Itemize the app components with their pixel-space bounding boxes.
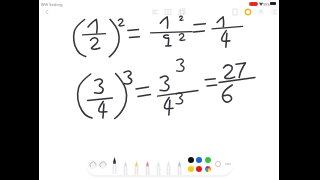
button[interactable]: Settings [223, 159, 233, 169]
button[interactable]: Pen 4 [143, 153, 152, 175]
button[interactable]: Colour 6 [204, 165, 212, 173]
staticText: 99% [263, 2, 271, 7]
button[interactable]: Text style [149, 6, 160, 17]
button[interactable]: Pen 2 [121, 153, 130, 175]
button[interactable]: Pen 5 [154, 153, 163, 175]
button[interactable]: Insert image [162, 6, 173, 17]
button[interactable]: Colour 2 [195, 156, 203, 164]
button[interactable]: Pen 6 [164, 153, 173, 175]
button[interactable]: Undo [88, 160, 97, 169]
button[interactable]: Colour 4 [187, 165, 195, 173]
button[interactable]: Colour 5 [195, 165, 203, 173]
button[interactable]: Back [41, 6, 52, 17]
button[interactable]: Profile [255, 6, 266, 17]
button[interactable]: More options [268, 6, 279, 17]
button[interactable]: Highlighter [242, 6, 253, 17]
button[interactable]: Eraser [213, 159, 223, 169]
button[interactable]: Pen 1 [110, 153, 119, 175]
staticText: Wifi Setting [41, 2, 63, 7]
button[interactable]: Bookmark [229, 6, 240, 17]
button[interactable]: Pen 7 [175, 153, 184, 175]
button[interactable]: Copy [176, 6, 187, 17]
button[interactable]: Redo [98, 160, 107, 169]
button[interactable]: Colour 3 [204, 156, 212, 164]
button[interactable]: Colour 1 [187, 156, 195, 164]
button[interactable]: Pen 3 [132, 153, 141, 175]
